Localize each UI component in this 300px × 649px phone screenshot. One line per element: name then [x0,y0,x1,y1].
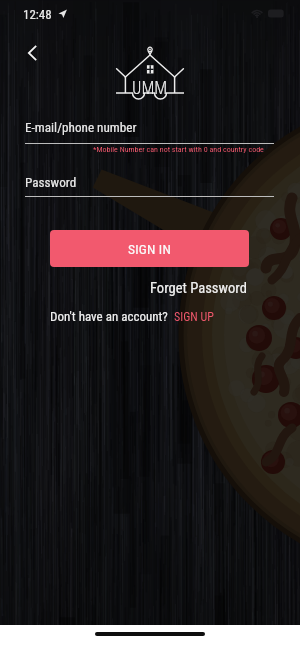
button[interactable]: Back [17,38,47,68]
staticText: E-mail/phone number [25,120,137,135]
staticText: Password [25,175,77,190]
staticText: SIGN UP [174,310,214,324]
staticText: Forget Password [150,279,247,296]
staticText: SIGN IN [128,241,171,257]
button[interactable]: Forget Password [150,279,247,296]
staticText: UMM [132,74,168,100]
staticText: Don't have an account? [50,309,168,324]
staticText: *Mobile Number can not start with 0 and … [93,145,264,154]
staticText: 12:48 [23,7,52,22]
button[interactable]: SIGN UP [174,310,214,324]
button[interactable]: SIGN IN [50,230,249,267]
